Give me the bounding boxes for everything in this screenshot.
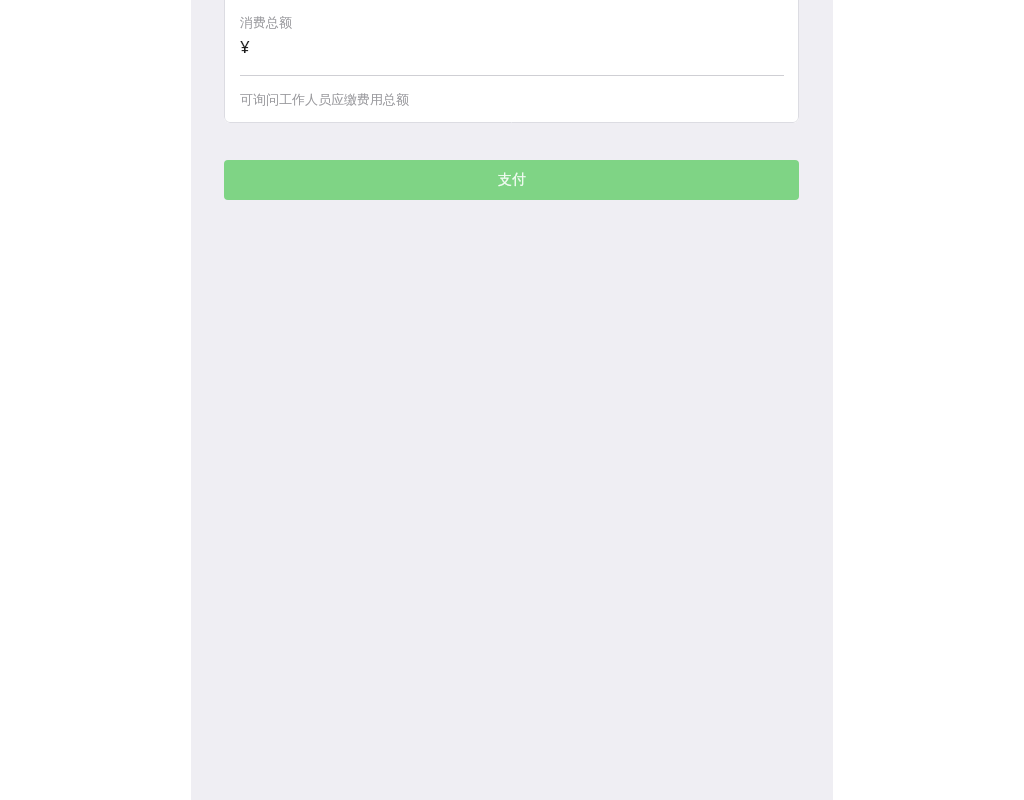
- staticText: 可询问工作人员应缴费用总额: [240, 91, 409, 107]
- staticText: 消费总额: [240, 14, 292, 30]
- staticText: ¥: [240, 35, 250, 58]
- staticText: 支付: [498, 171, 526, 189]
- button[interactable]: 支付: [224, 160, 799, 200]
- button[interactable]: ¥: [240, 30, 784, 63]
